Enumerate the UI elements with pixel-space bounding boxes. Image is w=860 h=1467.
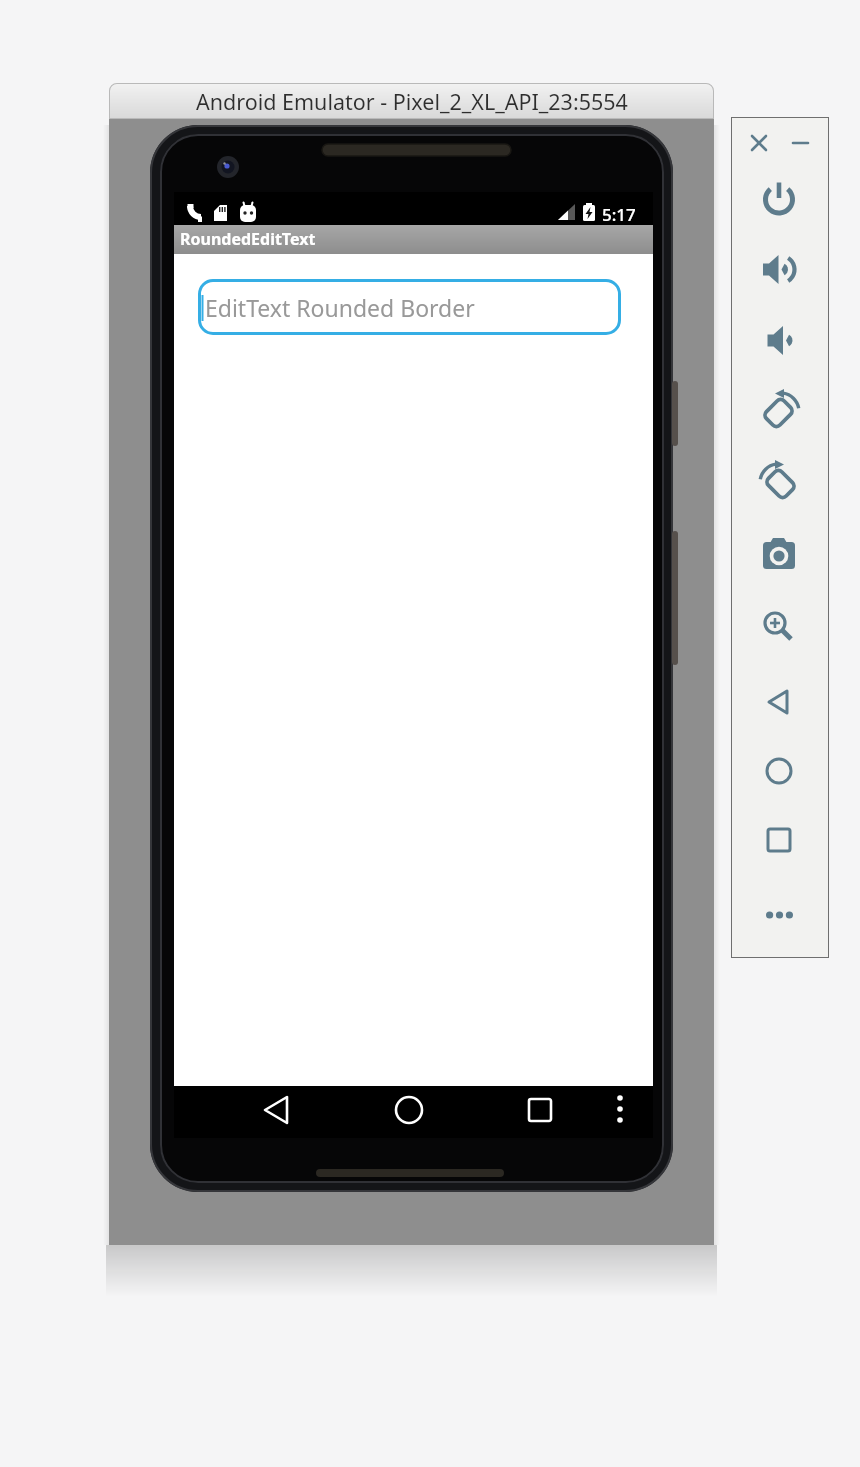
- button[interactable]: [755, 886, 803, 934]
- button[interactable]: [755, 600, 803, 648]
- button[interactable]: [786, 130, 816, 156]
- button[interactable]: [755, 678, 803, 726]
- button[interactable]: [755, 747, 803, 795]
- button[interactable]: [252, 1090, 300, 1134]
- button[interactable]: [516, 1090, 564, 1134]
- button[interactable]: [755, 316, 803, 364]
- staticText: Android Emulator - Pixel_2_XL_API_23:555…: [196, 87, 628, 116]
- staticText: 5:17: [602, 203, 636, 225]
- button[interactable]: [744, 130, 774, 156]
- button[interactable]: [755, 245, 803, 293]
- button[interactable]: EditText Rounded Border: [198, 279, 621, 335]
- button[interactable]: [755, 175, 803, 223]
- button[interactable]: [385, 1090, 433, 1134]
- button[interactable]: [755, 387, 803, 435]
- button[interactable]: [755, 458, 803, 506]
- staticText: RoundedEditText: [180, 228, 316, 250]
- button[interactable]: [755, 816, 803, 864]
- staticText: EditText Rounded Border: [205, 292, 475, 323]
- button[interactable]: [755, 529, 803, 577]
- button[interactable]: [600, 1090, 640, 1134]
